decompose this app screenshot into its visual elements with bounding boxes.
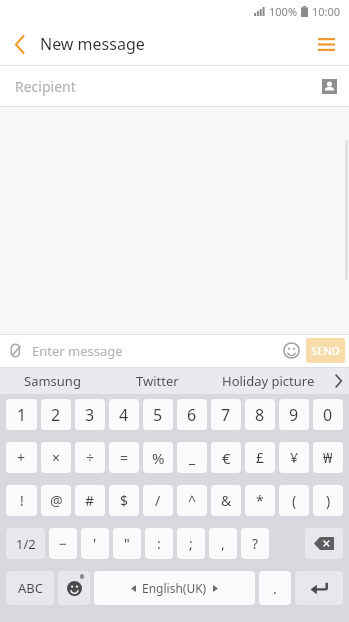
staticText: ): [326, 491, 331, 510]
staticText: 100%: [269, 4, 298, 19]
staticText: −: [59, 534, 68, 553]
staticText: Holiday picture: [222, 372, 315, 390]
staticText: %: [152, 448, 165, 468]
button[interactable]: Enter: [295, 571, 343, 605]
button[interactable]: ×: [41, 442, 71, 473]
staticText: ;: [189, 534, 193, 553]
button[interactable]: $: [109, 485, 139, 516]
button[interactable]: SEND: [306, 338, 345, 363]
button[interactable]: Menu: [303, 22, 349, 66]
button[interactable]: %: [143, 442, 173, 473]
button[interactable]: ;: [177, 528, 205, 559]
button[interactable]: 3: [75, 399, 105, 430]
button[interactable]: 5: [143, 399, 173, 430]
staticText: Recipient: [15, 77, 76, 96]
staticText: 10:00: [312, 4, 341, 19]
staticText: ?: [252, 534, 259, 553]
staticText: ÷: [86, 448, 95, 467]
button[interactable]: 1/2: [6, 528, 45, 559]
button[interactable]: Emoji and voice input: [58, 571, 90, 605]
staticText: 1: [17, 404, 27, 426]
button[interactable]: Twitter: [105, 367, 210, 394]
staticText: ABC: [18, 579, 43, 597]
staticText: €: [222, 448, 231, 468]
staticText: ,: [221, 534, 225, 553]
button[interactable]: +: [6, 442, 37, 473]
button[interactable]: ?: [241, 528, 269, 559]
staticText: 7: [221, 404, 231, 426]
staticText: ^: [188, 491, 197, 510]
staticText: 5: [153, 404, 163, 426]
button[interactable]: *: [245, 485, 275, 516]
button[interactable]: ÷: [75, 442, 105, 473]
staticText: English(UK): [142, 580, 207, 596]
button[interactable]: Back: [0, 22, 40, 66]
button[interactable]: ^: [177, 485, 207, 516]
button[interactable]: _: [177, 442, 207, 473]
button[interactable]: Attach: [0, 334, 32, 367]
button[interactable]: &: [211, 485, 241, 516]
button[interactable]: 7: [211, 399, 241, 430]
staticText: ': [93, 534, 97, 553]
staticText: ₩: [323, 448, 333, 467]
button[interactable]: 1: [6, 399, 37, 430]
button[interactable]: !: [6, 485, 37, 516]
staticText: 9: [289, 404, 299, 426]
button[interactable]: .: [259, 571, 291, 605]
staticText: $: [120, 491, 129, 510]
staticText: .: [273, 579, 277, 598]
button[interactable]: 6: [177, 399, 207, 430]
staticText: SEND: [311, 343, 340, 358]
staticText: 2: [51, 404, 61, 426]
button[interactable]: 4: [109, 399, 139, 430]
staticText: &: [221, 491, 232, 510]
button[interactable]: £: [245, 442, 275, 473]
button[interactable]: Add recipient: [309, 66, 349, 106]
button[interactable]: ₩: [313, 442, 343, 473]
button[interactable]: 9: [279, 399, 309, 430]
staticText: =: [120, 448, 129, 467]
button[interactable]: −: [49, 528, 77, 559]
button[interactable]: Emoji: [276, 334, 306, 367]
button[interactable]: ¥: [279, 442, 309, 473]
staticText: *: [256, 491, 264, 510]
button[interactable]: ABC: [6, 571, 54, 605]
button[interactable]: 2: [41, 399, 71, 430]
button[interactable]: =: [109, 442, 139, 473]
button[interactable]: More suggestions: [327, 367, 349, 394]
button[interactable]: Holiday picture: [210, 367, 327, 394]
button[interactable]: ): [313, 485, 343, 516]
staticText: 8: [255, 404, 265, 426]
button[interactable]: Space: [94, 571, 255, 605]
button[interactable]: (: [279, 485, 309, 516]
button[interactable]: 8: [245, 399, 275, 430]
staticText: 3: [85, 404, 95, 426]
button[interactable]: /: [143, 485, 173, 516]
button[interactable]: Backspace: [305, 528, 343, 559]
staticText: ¥: [290, 448, 299, 467]
button[interactable]: €: [211, 442, 241, 473]
staticText: !: [20, 491, 24, 510]
staticText: 4: [119, 404, 129, 426]
staticText: New message: [40, 33, 145, 55]
staticText: :: [157, 534, 161, 553]
button[interactable]: :: [145, 528, 173, 559]
staticText: Enter message: [32, 342, 123, 360]
button[interactable]: @: [41, 485, 71, 516]
button[interactable]: ': [81, 528, 109, 559]
button[interactable]: 0: [313, 399, 343, 430]
staticText: 0: [323, 404, 333, 426]
staticText: #: [85, 491, 95, 510]
staticText: ×: [52, 448, 61, 467]
staticText: 6: [187, 404, 197, 426]
button[interactable]: Samsung: [0, 367, 105, 394]
button[interactable]: #: [75, 485, 105, 516]
button[interactable]: ": [113, 528, 141, 559]
staticText: /: [155, 491, 161, 510]
staticText: (: [292, 491, 297, 510]
staticText: +: [17, 448, 26, 467]
staticText: _: [189, 448, 196, 467]
button[interactable]: ,: [209, 528, 237, 559]
staticText: Twitter: [136, 372, 179, 390]
staticText: 1/2: [16, 535, 36, 553]
